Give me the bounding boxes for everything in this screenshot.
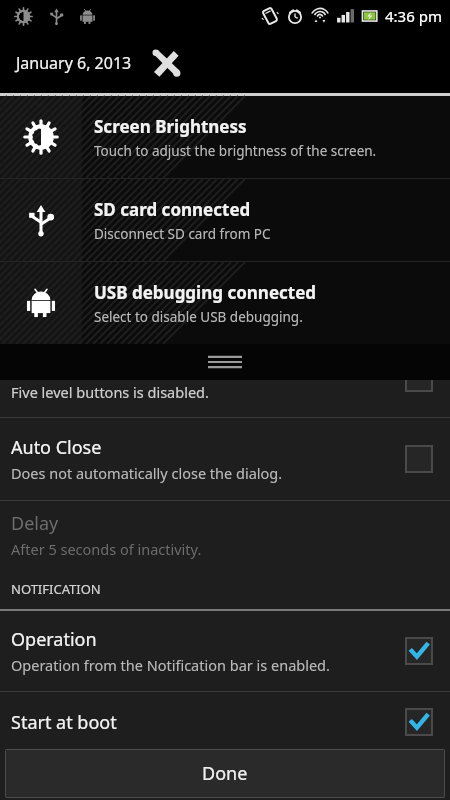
staticText: Auto Close <box>11 435 102 460</box>
button[interactable]: Auto Close <box>0 418 450 500</box>
button[interactable]: USB debugging connected <box>0 262 450 344</box>
staticText: Select to disable USB debugging. <box>94 308 303 326</box>
staticText: Operation from the Notification bar is e… <box>11 655 330 675</box>
button[interactable]: Delay <box>0 501 450 569</box>
staticText: Start at boot <box>11 710 117 735</box>
button[interactable]: Operation <box>0 611 450 691</box>
staticText: Does not automatically close the dialog. <box>11 463 283 483</box>
staticText: Delay <box>11 511 59 536</box>
button[interactable]: Settings <box>147 44 185 82</box>
staticText: Done <box>202 761 248 786</box>
staticText: NOTIFICATION <box>11 580 101 598</box>
staticText: 4:36 pm <box>385 6 442 26</box>
button[interactable]: Start at boot <box>0 692 450 752</box>
staticText: Operation <box>11 627 97 652</box>
staticText: Screen Brightness <box>94 115 247 138</box>
staticText: Disconnect SD card from PC <box>94 225 271 243</box>
staticText: SD card connected <box>94 198 251 221</box>
button[interactable]: Done <box>5 749 445 798</box>
button[interactable]: Close notification shade <box>0 344 450 380</box>
staticText: After 5 seconds of inactivity. <box>11 539 202 559</box>
button[interactable]: Layout <box>0 339 450 417</box>
staticText: Touch to adjust the brightness of the sc… <box>94 142 377 160</box>
button[interactable]: SD card connected <box>0 179 450 261</box>
staticText: USB debugging connected <box>94 281 317 304</box>
staticText: January 6, 2013 <box>16 52 132 74</box>
button[interactable]: Screen Brightness <box>0 96 450 178</box>
staticText: Five level buttons is disabled. <box>11 382 209 402</box>
